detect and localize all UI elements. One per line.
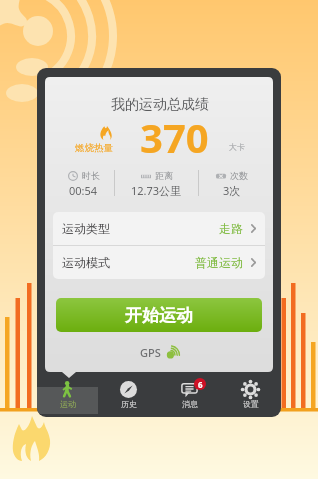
staticText: 开始运动 [125,305,193,326]
staticText: 走路 [219,221,243,236]
button[interactable]: 运动模式 [53,246,265,279]
staticText: 12.73公里 [131,183,182,198]
button[interactable]: 开始运动 [56,298,262,332]
staticText: 00:54 [69,183,98,198]
staticText: 运动 [60,399,76,409]
staticText: 历史 [121,399,137,409]
button[interactable]: 消息 [159,378,220,412]
staticText: 3次 [223,183,241,198]
staticText: 普通运动 [195,255,243,270]
staticText: GPS [140,345,161,360]
staticText: 运动类型 [62,221,110,236]
staticText: 时长 [82,170,100,181]
staticText: 燃烧热量 [75,142,113,154]
staticText: 次数 [230,170,248,181]
staticText: 设置 [243,399,259,409]
button[interactable]: 历史 [98,378,159,412]
staticText: 我的运动总成绩 [46,96,274,114]
staticText: 大卡 [229,142,245,152]
button[interactable]: 运动类型 [53,212,265,245]
staticText: 距离 [155,170,173,181]
staticText: 运动模式 [62,255,110,270]
staticText: 6 [198,379,203,390]
button[interactable]: 设置 [220,378,281,412]
staticText: 370 [140,110,209,164]
staticText: 消息 [182,399,198,409]
button[interactable]: 运动 [37,378,98,412]
